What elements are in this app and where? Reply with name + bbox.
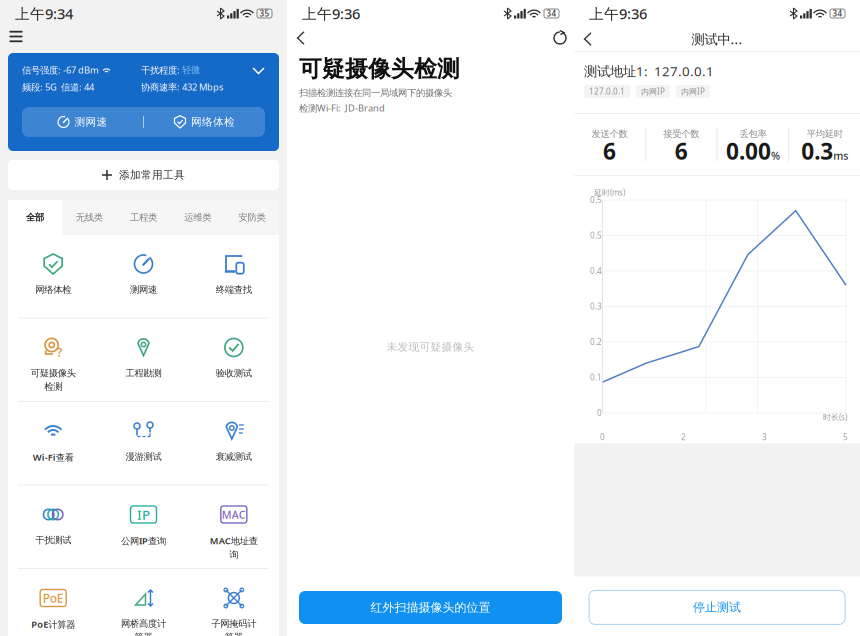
staticText: 安防类 bbox=[238, 212, 265, 223]
staticText: IP bbox=[137, 506, 150, 523]
staticText: 干扰程度: bbox=[141, 64, 182, 76]
staticText: 5 bbox=[843, 432, 848, 442]
staticText: 上午9:36 bbox=[589, 4, 647, 23]
staticText: 0.3 bbox=[801, 136, 833, 166]
button[interactable]: Back bbox=[575, 27, 601, 51]
staticText: 可疑摄像头检测 bbox=[299, 55, 460, 83]
button[interactable]: 全部 bbox=[8, 200, 62, 235]
button[interactable]: 衰减测试 bbox=[189, 402, 279, 484]
button[interactable]: 网桥高度计 bbox=[98, 569, 189, 636]
staticText: 测网速 bbox=[74, 115, 107, 128]
staticText: 扫描检测连接在同一局域网下的摄像头 bbox=[299, 87, 452, 99]
button[interactable]: 测网速 bbox=[98, 235, 189, 317]
staticText: 127.0.0.1 bbox=[589, 86, 625, 97]
staticText: 延时(ms) bbox=[594, 187, 625, 198]
staticText: 35 bbox=[259, 8, 269, 19]
staticText: Wi-Fi查看 bbox=[33, 451, 74, 463]
staticText: 平均延时 bbox=[807, 128, 843, 140]
button[interactable]: 停止测试 bbox=[589, 590, 845, 624]
staticText: 频段: 5G 信道: 44 bbox=[22, 81, 94, 93]
staticText: 内网IP bbox=[681, 86, 705, 97]
staticText: 检测Wi-Fi: JD-Brand bbox=[299, 102, 385, 114]
button[interactable]: 测网速 bbox=[22, 107, 265, 137]
button[interactable]: ? bbox=[8, 318, 98, 401]
staticText: 0.2 bbox=[590, 337, 602, 347]
button[interactable]: 工程勘测 bbox=[98, 318, 189, 401]
staticText: MAC bbox=[222, 507, 246, 522]
staticText: 网络体检 bbox=[35, 284, 71, 295]
staticText: 0 bbox=[600, 432, 605, 442]
staticText: 公网IP查询 bbox=[121, 534, 166, 547]
staticText: 红外扫描摄像头的位置 bbox=[370, 600, 490, 615]
staticText: MAC地址查 bbox=[210, 534, 258, 547]
staticText: 上午9:34 bbox=[15, 4, 73, 23]
staticText: 0 bbox=[597, 408, 602, 418]
staticText: 测网速 bbox=[130, 284, 157, 295]
staticText: PoE计算器 bbox=[31, 618, 75, 630]
button[interactable]: 漫游测试 bbox=[98, 402, 189, 484]
staticText: 协商速率: 432 Mbps bbox=[141, 81, 223, 93]
staticText: 算器 bbox=[225, 631, 243, 636]
button[interactable]: Wi-Fi查看 bbox=[8, 402, 98, 484]
staticText: 6 bbox=[603, 136, 616, 166]
button[interactable]: Back bbox=[288, 27, 314, 49]
staticText: 干扰测试 bbox=[35, 534, 71, 546]
button[interactable]: PoE bbox=[8, 569, 98, 636]
staticText: 0.5 bbox=[590, 230, 602, 241]
staticText: 子网掩码计 bbox=[211, 618, 256, 629]
button[interactable]: 网络体检 bbox=[8, 235, 98, 317]
button[interactable]: 验收测试 bbox=[189, 318, 279, 401]
button[interactable]: 工程类 bbox=[116, 200, 171, 235]
button[interactable]: MAC bbox=[189, 485, 279, 568]
staticText: 终端查找 bbox=[216, 284, 252, 295]
staticText: ? bbox=[57, 344, 63, 360]
staticText: 工程勘测 bbox=[125, 367, 161, 379]
staticText: 网络体检 bbox=[191, 115, 235, 128]
staticText: 发送个数 bbox=[591, 128, 627, 140]
staticText: 算器 bbox=[134, 631, 152, 636]
button[interactable]: Menu bbox=[3, 26, 29, 46]
button[interactable]: 干扰测试 bbox=[8, 485, 98, 568]
staticText: 信号强度: -67 dBm bbox=[22, 64, 99, 76]
staticText: 0.00 bbox=[726, 136, 771, 166]
staticText: PoE bbox=[43, 590, 64, 606]
button[interactable]: IP bbox=[98, 485, 189, 568]
staticText: 34 bbox=[546, 8, 556, 19]
button[interactable]: 子网掩码计 bbox=[189, 569, 279, 636]
button[interactable]: 安防类 bbox=[225, 200, 279, 235]
staticText: 0.1 bbox=[590, 372, 602, 383]
staticText: 添加常用工具 bbox=[119, 168, 185, 181]
button[interactable]: 红外扫描摄像头的位置 bbox=[299, 591, 562, 624]
staticText: 未发现可疑摄像头 bbox=[386, 340, 474, 353]
staticText: 询 bbox=[229, 549, 238, 560]
button[interactable]: 运维类 bbox=[171, 200, 225, 235]
staticText: 测试中... bbox=[691, 30, 742, 48]
staticText: 0.3 bbox=[590, 301, 602, 312]
button[interactable]: 添加常用工具 bbox=[8, 160, 279, 190]
staticText: 0.5 bbox=[590, 195, 602, 205]
staticText: 2 bbox=[681, 432, 686, 442]
staticText: 验收测试 bbox=[216, 367, 252, 379]
staticText: 0.4 bbox=[590, 266, 602, 276]
staticText: 网桥高度计 bbox=[121, 618, 166, 629]
staticText: 测试地址1: 127.0.0.1 bbox=[584, 62, 714, 80]
staticText: 34 bbox=[832, 8, 842, 19]
staticText: 接受个数 bbox=[663, 128, 699, 140]
staticText: 丢包率 bbox=[739, 128, 766, 140]
staticText: 3 bbox=[762, 432, 767, 442]
staticText: 轻微 bbox=[182, 64, 200, 76]
staticText: 衰减测试 bbox=[216, 451, 252, 462]
staticText: % bbox=[771, 149, 780, 163]
staticText: 上午9:36 bbox=[302, 4, 360, 23]
button[interactable]: Refresh bbox=[547, 27, 573, 49]
staticText: 6 bbox=[675, 136, 688, 166]
staticText: 全部 bbox=[26, 212, 44, 223]
staticText: ms bbox=[833, 149, 848, 163]
staticText: 停止测试 bbox=[693, 600, 741, 615]
staticText: 检测 bbox=[44, 381, 62, 392]
button[interactable]: 无线类 bbox=[62, 200, 116, 235]
staticText: 时长(s) bbox=[823, 412, 847, 422]
staticText: 工程类 bbox=[130, 212, 157, 223]
button[interactable]: 终端查找 bbox=[189, 235, 279, 317]
staticText: 可疑摄像头 bbox=[31, 367, 76, 379]
